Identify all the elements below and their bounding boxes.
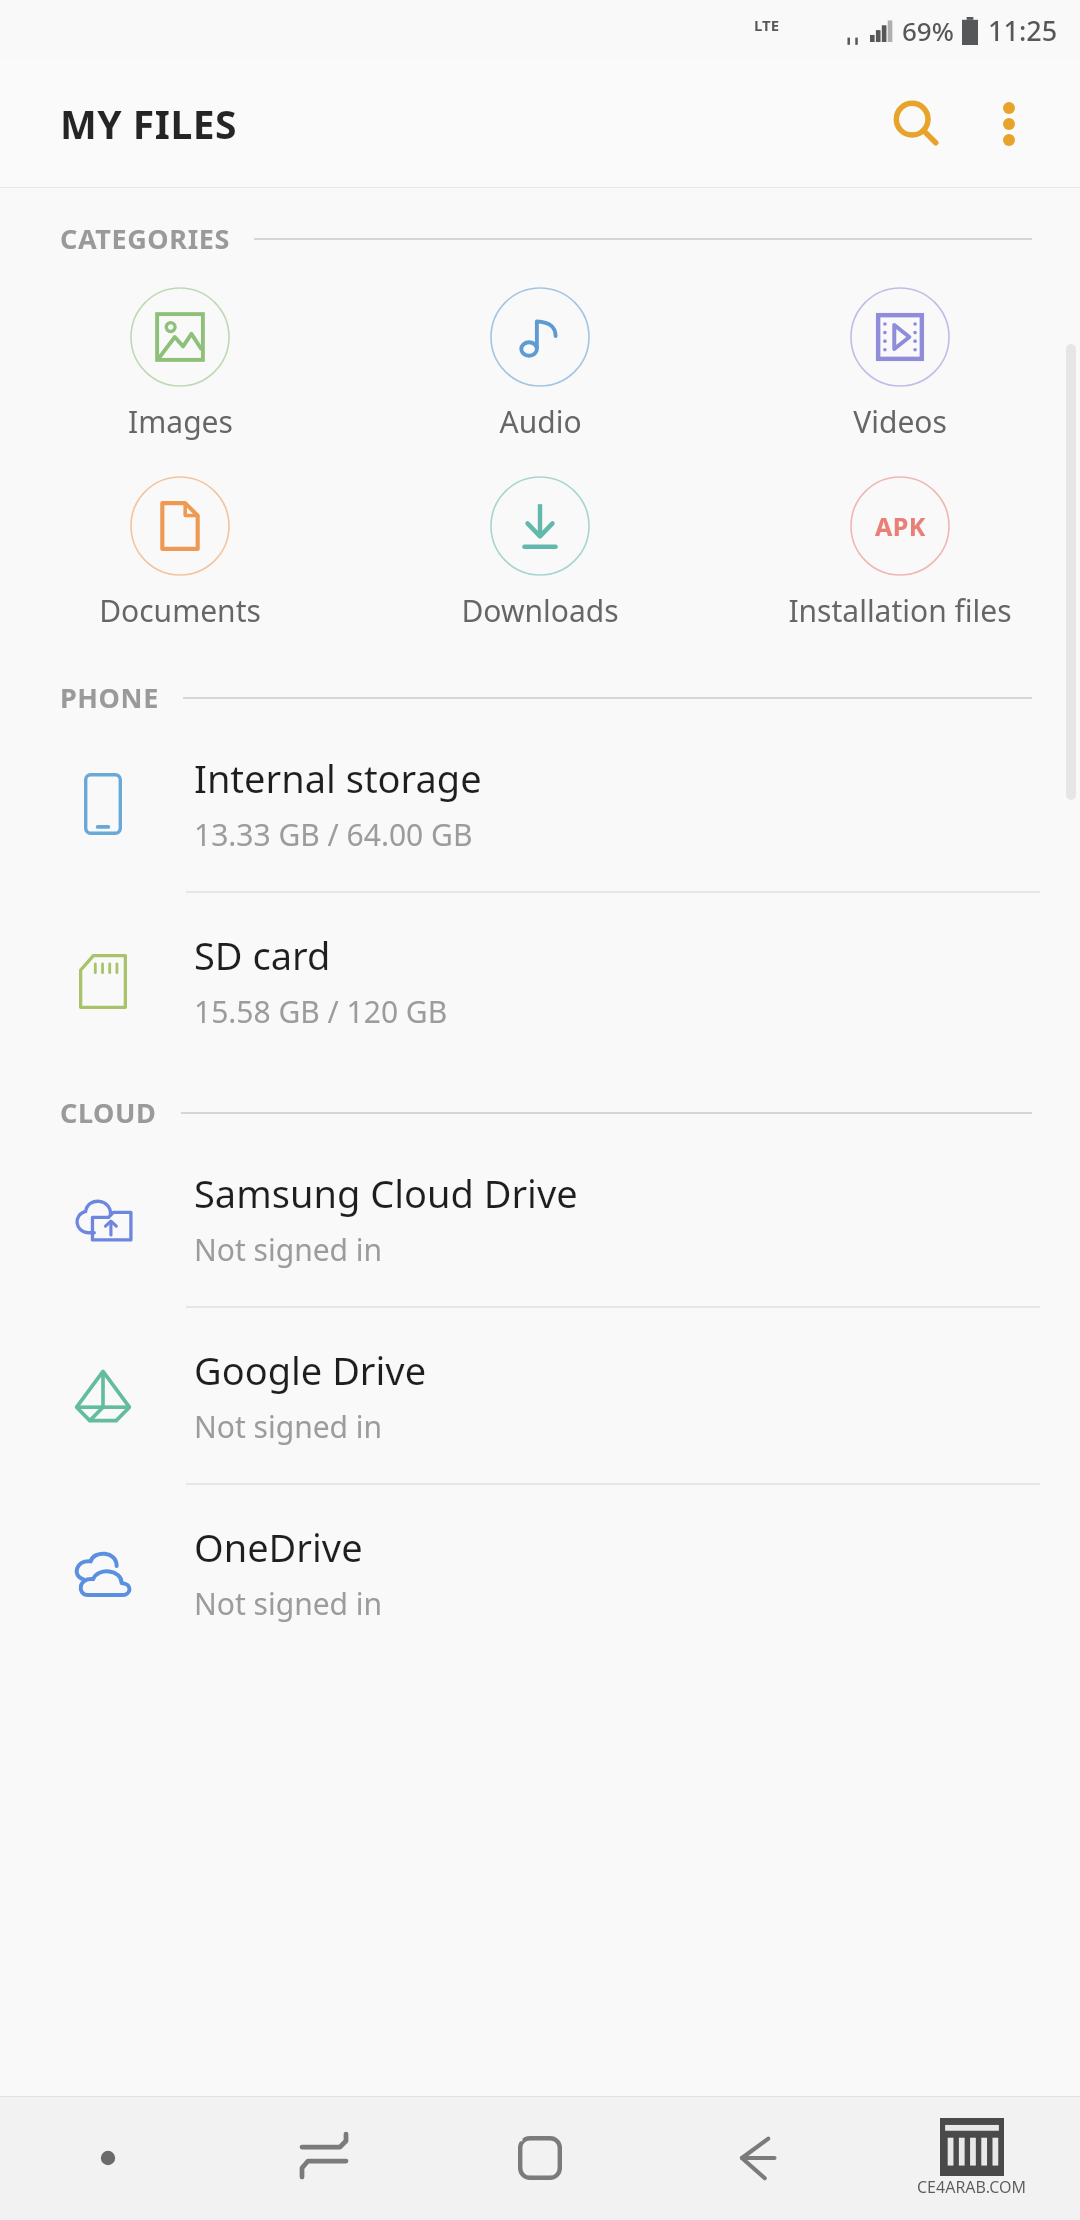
staticText: Google Drive (194, 1344, 427, 1396)
button[interactable]: Back (648, 2096, 864, 2220)
staticText: Samsung Cloud Drive (194, 1167, 578, 1219)
staticText: Images (128, 401, 233, 442)
button[interactable]: OneDrive (0, 1485, 1080, 1660)
staticText: Not signed in (194, 1583, 383, 1624)
staticText: Internal storage (194, 752, 482, 804)
staticText: 11:25 (988, 12, 1058, 49)
button[interactable]: Home (432, 2096, 648, 2220)
button[interactable]: Videos (720, 281, 1080, 448)
staticText: 15.58 GB / 120 GB (194, 991, 448, 1032)
staticText: 69% (902, 13, 954, 48)
button[interactable]: Internal storage (0, 716, 1080, 891)
staticText: OneDrive (194, 1521, 363, 1573)
staticText: CLOUD (60, 1094, 157, 1131)
button[interactable]: More options (964, 79, 1054, 169)
button[interactable]: Documents (0, 470, 360, 637)
staticText: PHONE (60, 679, 159, 716)
staticText: LTE (754, 15, 780, 35)
button[interactable]: Hide navigation bar (0, 2096, 216, 2220)
staticText: CATEGORIES (60, 220, 230, 257)
button[interactable]: Google Drive (0, 1308, 1080, 1483)
button[interactable]: SD card (0, 893, 1080, 1068)
staticText: MY FILES (60, 97, 238, 150)
button[interactable]: Images (0, 281, 360, 448)
button[interactable]: Samsung Cloud Drive (0, 1131, 1080, 1306)
button[interactable]: Audio (360, 281, 720, 448)
button[interactable]: Recents (216, 2096, 432, 2220)
staticText: Videos (853, 401, 947, 442)
button[interactable]: APK (720, 470, 1080, 637)
staticText: SD card (194, 929, 331, 981)
staticText: Downloads (461, 590, 619, 631)
staticText: Installation files (788, 590, 1012, 631)
staticText: Audio (499, 401, 582, 442)
staticText: Documents (99, 590, 261, 631)
staticText: APK (875, 509, 926, 543)
staticText: CE4ARAB.COM (917, 2176, 1027, 2198)
staticText: Not signed in (194, 1229, 383, 1270)
staticText: 13.33 GB / 64.00 GB (194, 814, 473, 855)
button[interactable]: Downloads (360, 470, 720, 637)
button[interactable]: Search (868, 76, 964, 172)
staticText: Not signed in (194, 1406, 383, 1447)
